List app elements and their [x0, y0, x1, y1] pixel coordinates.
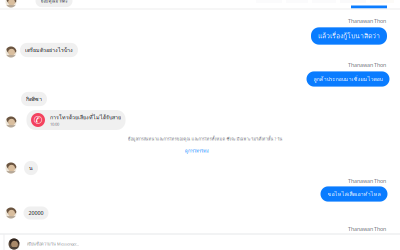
staticText: เขียนข้อความใน Messenger...	[27, 241, 79, 247]
button[interactable]: ดูการโทรใหม่	[185, 148, 209, 154]
staticText: ดูการโทรใหม่	[185, 148, 209, 154]
staticText: ข้อมูลการสนทนาและการโทรของคุณ และการโทรท…	[127, 136, 282, 142]
staticText: ลูกค้าประกอบมาเชิ่งผมไวตอบ	[313, 75, 382, 83]
button[interactable]: ขอไหไล่เสืดเอาทำไหล	[320, 186, 387, 202]
staticText: แล้วเรื่องกู้โบนาสิดว่า	[318, 31, 380, 41]
button[interactable]: 20000	[23, 206, 48, 220]
button[interactable]: น	[24, 161, 38, 175]
staticText: Thanawan Thon	[348, 225, 386, 233]
staticText: กิตติชา	[26, 95, 42, 103]
button[interactable]: ขอบคุณมากค่ะ	[35, 0, 72, 7]
staticText: 10:00	[50, 121, 59, 127]
staticText: 20000	[28, 209, 43, 217]
button[interactable]: ✆	[26, 110, 125, 130]
staticText: Thanawan Thon	[348, 17, 386, 25]
staticText: น	[29, 164, 33, 172]
staticText: ✆	[33, 114, 42, 126]
staticText: Thanawan Thon	[348, 61, 386, 69]
button[interactable]: เตรียมตัวอย่างไรบ้าง	[20, 43, 78, 57]
staticText: เตรียมตัวอย่างไรบ้าง	[25, 46, 73, 54]
staticText: การโทรด้วยเสียงที่ไม่ได้รับสาย	[50, 113, 121, 121]
staticText: ขอบคุณมากค่ะ	[40, 0, 67, 4]
staticText: ขอไหไล่เสืดเอาทำไหล	[327, 190, 380, 198]
button[interactable]: แล้วเรื่องกู้โบนาสิดว่า	[311, 27, 387, 45]
button[interactable]: กิตติชา	[21, 92, 47, 106]
staticText: Thanawan Thon	[348, 177, 386, 185]
button[interactable]: ลูกค้าประกอบมาเชิ่งผมไวตอบ	[306, 71, 389, 87]
